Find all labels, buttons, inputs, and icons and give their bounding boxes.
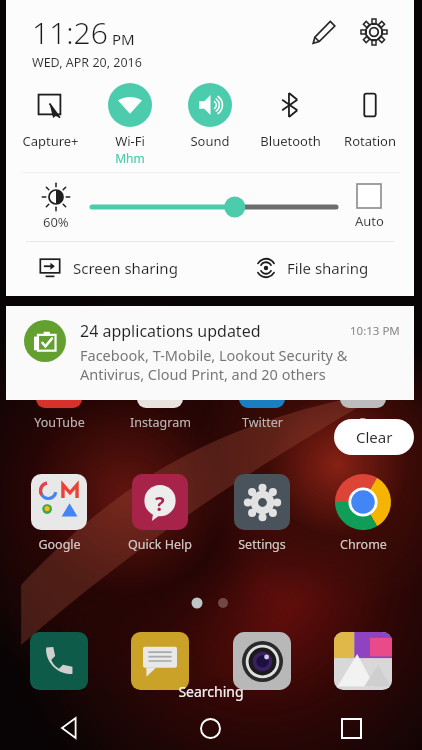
staticText: WED, APR 20, 2016 (32, 54, 142, 71)
staticText: Instagram (130, 414, 191, 431)
staticText: PM (112, 29, 135, 49)
button[interactable]: YouTube (16, 396, 102, 431)
staticText: Auto (355, 212, 384, 230)
button[interactable] (16, 632, 102, 690)
staticText: YouTube (34, 414, 85, 431)
button[interactable]: Auto (344, 184, 394, 230)
button[interactable]: Settings (219, 474, 305, 553)
staticText: 10:13 PM (350, 323, 400, 339)
button[interactable]: P (320, 396, 406, 431)
staticText: Searching (0, 682, 422, 701)
button[interactable]: Edit (304, 12, 344, 52)
staticText: Wi-Fi (115, 132, 145, 150)
button[interactable] (92, 187, 336, 227)
button[interactable]: Google (16, 474, 102, 553)
staticText: Bluetooth (260, 132, 321, 150)
staticText: Chrome (340, 536, 387, 553)
staticText: Twitter (242, 414, 283, 431)
staticText: Screen sharing (73, 258, 178, 278)
button[interactable] (117, 632, 203, 690)
button[interactable]: File sharing (210, 242, 414, 294)
button[interactable]: Chrome (320, 474, 406, 553)
staticText: Clear (356, 427, 393, 447)
staticText: Settings (238, 536, 286, 553)
staticText: Rotation (344, 132, 396, 150)
staticText: P (359, 414, 367, 431)
button[interactable]: Home (140, 706, 281, 750)
button[interactable]: Settings (354, 12, 394, 52)
button[interactable]: Rotation (330, 83, 410, 150)
button[interactable]: ? (117, 474, 203, 553)
staticText: Facebook, T-Mobile, Lookout Security & A… (80, 345, 348, 384)
button[interactable]: Sound (170, 83, 250, 150)
button[interactable]: Twitter (219, 396, 305, 431)
button[interactable]: 60% (28, 184, 84, 231)
button[interactable]: Recents (281, 706, 422, 750)
staticText: Quick Help (128, 536, 192, 553)
button[interactable]: Clear (334, 419, 414, 455)
staticText: Mhm (115, 150, 145, 166)
staticText: 60% (43, 213, 69, 231)
button[interactable]: Capture+ (10, 83, 90, 150)
button[interactable]: 24 applications updated (6, 306, 414, 400)
button[interactable]: Screen sharing (6, 242, 210, 294)
button[interactable] (219, 632, 305, 690)
staticText: File sharing (287, 258, 369, 278)
button[interactable]: Instagram (117, 396, 203, 431)
staticText: 11:26 (32, 12, 108, 53)
staticText: ? (155, 489, 165, 516)
button[interactable] (320, 632, 406, 690)
button[interactable]: Bluetooth (250, 83, 330, 150)
staticText: Google (38, 536, 81, 553)
staticText: 24 applications updated (80, 320, 350, 342)
button[interactable]: Back (0, 706, 140, 750)
button[interactable]: Wi-Fi (90, 83, 170, 166)
staticText: Sound (190, 132, 230, 150)
staticText: Capture+ (22, 132, 79, 150)
